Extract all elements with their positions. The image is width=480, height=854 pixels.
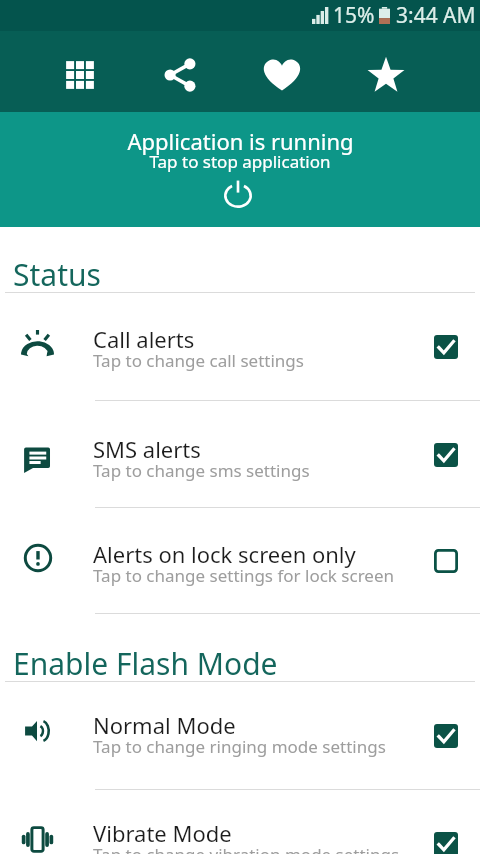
button[interactable]: Share <box>156 51 204 99</box>
staticText: 3:44 AM <box>396 1 476 30</box>
staticText: Tap to change call settings <box>93 349 304 372</box>
button[interactable]: Call alerts <box>0 293 480 400</box>
button[interactable]: Application is running <box>0 112 480 227</box>
button[interactable]: Apps <box>56 51 104 99</box>
staticText: Application is running <box>127 126 354 156</box>
staticText: Tap to change settings for lock screen <box>93 564 395 587</box>
button[interactable]: Alerts on lock screen only <box>0 508 480 613</box>
staticText: Enable Flash Mode <box>13 643 278 684</box>
staticText: Tap to change sms settings <box>93 459 310 482</box>
staticText: SMS alerts <box>93 434 201 464</box>
staticText: Tap to stop application <box>149 150 331 173</box>
staticText: 15% <box>333 1 375 30</box>
button[interactable]: SMS alerts <box>0 401 480 507</box>
staticText: Status <box>13 254 101 295</box>
staticText: Tap to change vibration mode settings <box>93 843 400 854</box>
staticText: Call alerts <box>93 324 195 354</box>
staticText: Tap to change ringing mode settings <box>93 735 386 758</box>
button[interactable]: Favorite <box>258 51 306 99</box>
staticText: Vibrate Mode <box>93 818 232 848</box>
button[interactable]: Vibrate Mode <box>0 790 480 854</box>
button[interactable]: Rate <box>362 51 410 99</box>
staticText: Normal Mode <box>93 710 236 740</box>
staticText: Alerts on lock screen only <box>93 539 356 569</box>
button[interactable]: Normal Mode <box>0 682 480 789</box>
